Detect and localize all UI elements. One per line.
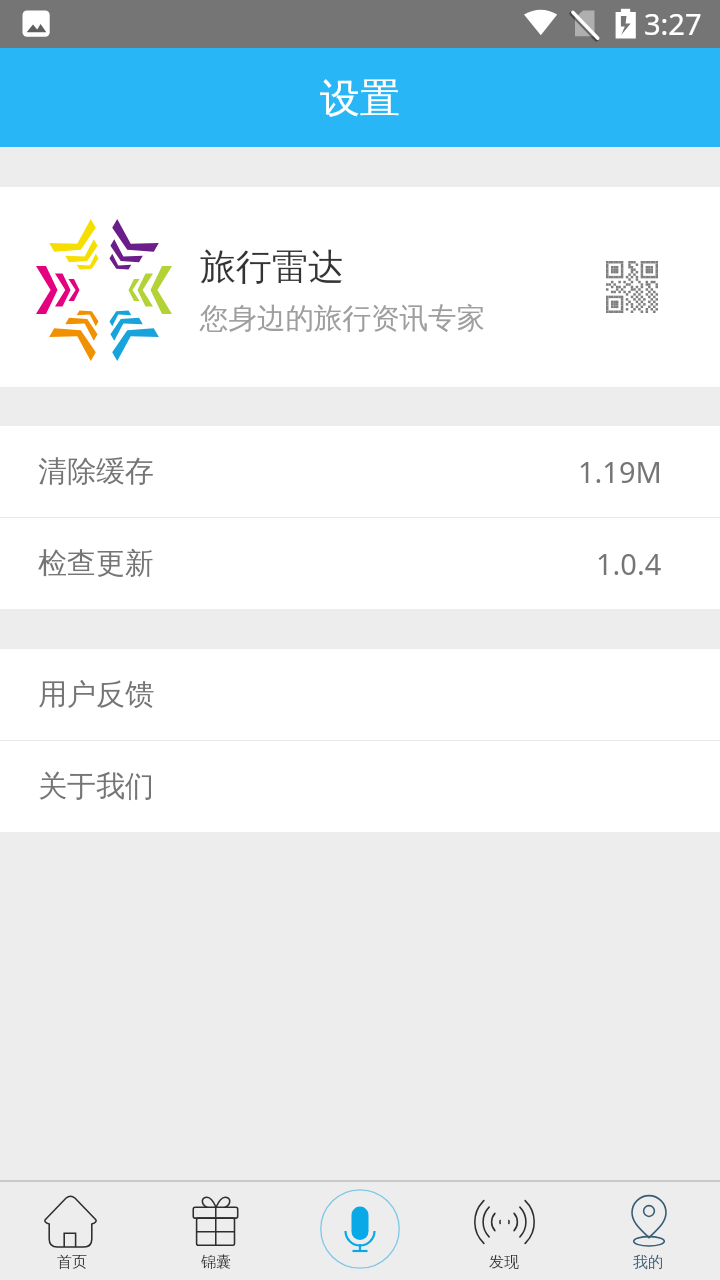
staticText: 1.19M <box>578 452 662 491</box>
button[interactable]: 检查更新 <box>0 518 720 609</box>
staticText: 设置 <box>320 73 400 123</box>
staticText: 清除缓存 <box>38 453 154 490</box>
button[interactable]: 语音 <box>288 1182 432 1280</box>
staticText: 您身边的旅行资讯专家 <box>200 301 485 337</box>
staticText: 1.0.4 <box>596 544 662 583</box>
button[interactable]: 用户反馈 <box>0 649 720 740</box>
staticText: 首页 <box>57 1253 87 1272</box>
button[interactable]: 首页 <box>0 1182 144 1280</box>
staticText: 关于我们 <box>38 768 154 805</box>
staticText: 用户反馈 <box>38 676 154 713</box>
staticText: 3:27 <box>644 4 702 43</box>
staticText: 发现 <box>489 1253 519 1272</box>
button[interactable]: 关于我们 <box>0 741 720 832</box>
staticText: 检查更新 <box>38 545 154 582</box>
button[interactable]: 我的 <box>576 1182 720 1280</box>
staticText: 旅行雷达 <box>200 244 344 289</box>
button[interactable]: 发现 <box>432 1182 576 1280</box>
staticText: 我的 <box>633 1253 663 1272</box>
button[interactable]: 锦囊 <box>144 1182 288 1280</box>
staticText: 锦囊 <box>201 1253 231 1272</box>
button[interactable]: 清除缓存 <box>0 426 720 517</box>
